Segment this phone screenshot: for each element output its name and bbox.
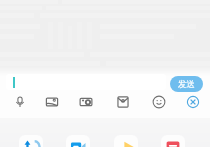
button[interactable]: Photos	[45, 95, 59, 109]
button[interactable]: Emoji	[152, 95, 166, 109]
button[interactable]: Camera	[79, 95, 93, 109]
button[interactable]: Close	[186, 95, 200, 109]
button[interactable]: Red packet	[116, 95, 130, 109]
button[interactable]: Voice message	[13, 95, 27, 109]
button[interactable]	[6, 74, 166, 90]
button[interactable]: App 1	[66, 135, 90, 147]
button[interactable]: App 0	[19, 135, 43, 147]
button[interactable]: App 2	[114, 135, 138, 147]
button[interactable]: 发送	[170, 76, 203, 92]
staticText: 发送	[178, 79, 195, 90]
button[interactable]: App 3	[161, 135, 185, 147]
